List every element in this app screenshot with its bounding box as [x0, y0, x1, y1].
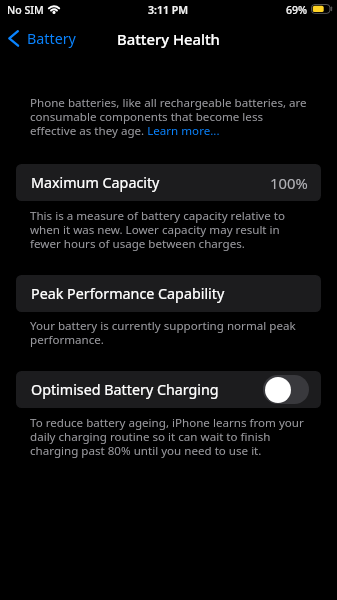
button[interactable]: Back to Battery [8, 28, 76, 49]
other: Back to Battery [8, 30, 19, 47]
staticText: No SIM [7, 3, 44, 17]
staticText: Battery Health [117, 29, 220, 49]
button[interactable]: Peak Performance Capability [16, 275, 321, 312]
staticText: To reduce battery ageing, iPhone learns … [30, 416, 308, 458]
button[interactable]: Optimised Battery Charging [16, 371, 321, 408]
button[interactable]: Optimised Battery Charging, off [263, 375, 309, 404]
staticText: This is a measure of battery capacity re… [30, 209, 308, 251]
button[interactable]: Maximum Capacity [16, 164, 321, 201]
staticText: Your battery is currently supporting nor… [30, 319, 308, 347]
staticText: Optimised Battery Charging [31, 380, 219, 399]
staticText: Phone batteries, like all rechargeable b… [30, 96, 308, 138]
staticText: 3:11 PM [148, 3, 189, 17]
staticText: Maximum Capacity [31, 173, 160, 192]
staticText: 100% [270, 173, 308, 193]
staticText: Peak Performance Capability [31, 284, 225, 303]
staticText: Battery [27, 29, 76, 48]
staticText: 69% [286, 3, 308, 17]
